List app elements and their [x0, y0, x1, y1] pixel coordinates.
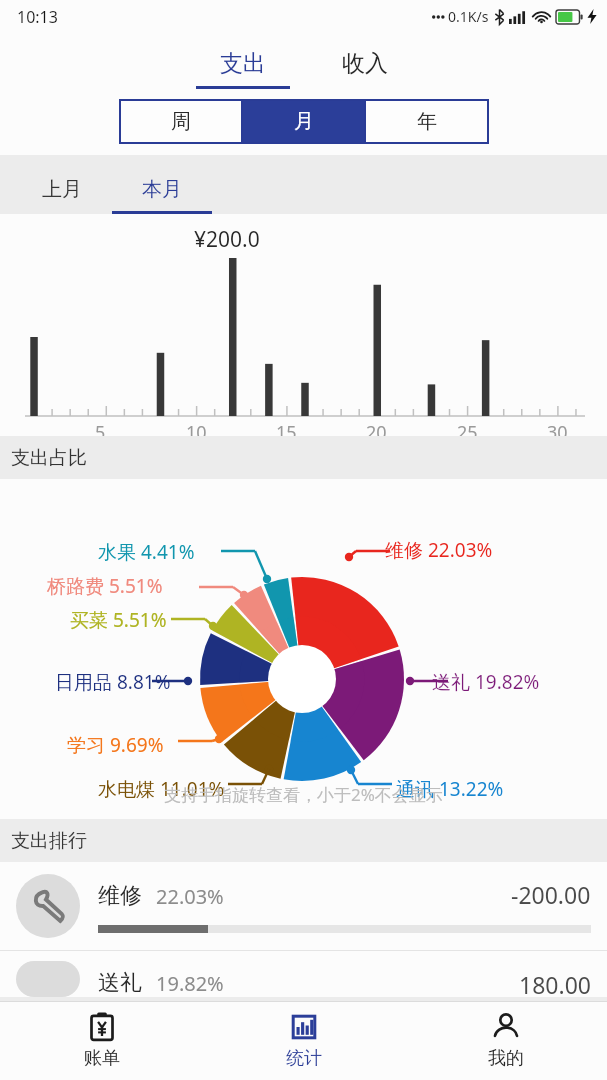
staticText: 25 — [457, 420, 478, 445]
button[interactable]: 支出 — [189, 43, 297, 89]
button[interactable]: 送礼 — [0, 951, 607, 997]
staticText: 5 — [95, 420, 106, 445]
button[interactable]: 年 — [366, 101, 487, 142]
staticText: 上月 — [42, 177, 82, 202]
staticText: 180.00 — [519, 969, 591, 997]
staticText: 20 — [366, 420, 387, 445]
staticText: -200.00 — [511, 879, 591, 910]
button[interactable]: 收入 — [311, 43, 419, 89]
button[interactable]: 月 — [243, 101, 364, 142]
staticText: 支出排行 — [11, 829, 87, 853]
staticText: 周 — [171, 109, 191, 134]
staticText: 学习 9.69% — [67, 732, 164, 758]
staticText: 账单 — [84, 1047, 120, 1070]
staticText: 日用品 8.81% — [55, 669, 171, 695]
staticText: 通讯 13.22% — [396, 776, 504, 802]
staticText: 支持手指旋转查看，小于2%不会显示 — [164, 783, 443, 806]
staticText: 维修 22.03% — [385, 537, 493, 563]
staticText: 水电煤 11.01% — [98, 776, 225, 802]
staticText: 支出 — [220, 49, 266, 78]
staticText: 22.03% — [156, 883, 224, 910]
staticText: 月 — [294, 109, 314, 134]
staticText: 送礼 19.82% — [432, 669, 540, 695]
staticText: 19.82% — [156, 970, 224, 997]
staticText: 买菜 5.51% — [70, 607, 167, 633]
staticText: 本月 — [142, 177, 182, 202]
staticText: 30 — [547, 420, 568, 445]
button[interactable]: 维修 — [0, 862, 607, 950]
staticText: 10 — [186, 420, 207, 445]
staticText: 年 — [417, 109, 437, 134]
button[interactable]: 上月 — [12, 177, 112, 214]
staticText: 送礼 — [98, 969, 142, 997]
staticText: 0.1K/s — [448, 7, 489, 26]
staticText: 10:13 — [17, 6, 58, 28]
button[interactable]: 统计 — [203, 1002, 405, 1080]
staticText: 统计 — [286, 1047, 322, 1070]
staticText: 我的 — [488, 1047, 524, 1070]
button[interactable]: 本月 — [112, 177, 212, 214]
staticText: 收入 — [342, 49, 388, 78]
staticText: 桥路费 5.51% — [47, 573, 163, 599]
staticText: 15 — [276, 420, 297, 445]
button[interactable]: 我的 — [405, 1002, 607, 1080]
staticText: ¥200.0 — [194, 225, 260, 254]
button[interactable]: 周 — [121, 101, 241, 142]
staticText: 支出占比 — [11, 446, 87, 470]
button[interactable]: 账单 — [0, 1002, 203, 1080]
staticText: 水果 4.41% — [98, 539, 195, 565]
staticText: 维修 — [98, 882, 142, 910]
